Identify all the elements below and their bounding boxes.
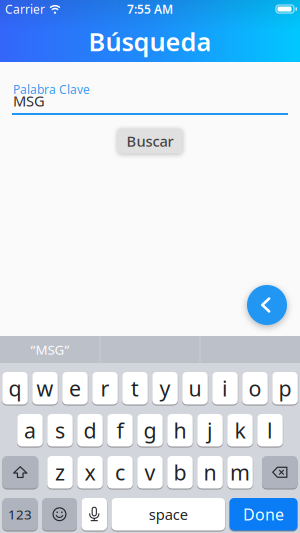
staticText: c — [115, 458, 125, 486]
staticText: a — [24, 416, 36, 444]
staticText: 123 — [8, 505, 32, 523]
staticText: 7:55 AM — [127, 1, 173, 17]
staticText: i — [222, 374, 228, 402]
staticText: k — [234, 416, 245, 444]
staticText: p — [278, 374, 291, 402]
staticText: m — [230, 458, 250, 486]
staticText: v — [144, 458, 155, 486]
staticText: z — [55, 458, 65, 486]
staticText: q — [8, 374, 21, 402]
staticText: e — [69, 374, 81, 402]
staticText: o — [248, 374, 261, 402]
staticText: d — [83, 416, 96, 444]
staticText: r — [100, 374, 109, 402]
staticText: space — [149, 504, 188, 524]
staticText: l — [267, 416, 273, 444]
staticText: j — [207, 416, 213, 444]
staticText: u — [188, 374, 201, 402]
staticText: n — [203, 458, 216, 486]
staticText: h — [173, 416, 186, 444]
staticText: Done — [243, 504, 284, 525]
staticText: w — [36, 374, 53, 402]
staticText: Carrier — [5, 1, 45, 17]
staticText: Búsqueda — [88, 24, 211, 58]
staticText: b — [173, 458, 186, 486]
staticText: MSG — [13, 91, 45, 110]
staticText: t — [131, 374, 139, 402]
staticText: x — [84, 458, 95, 486]
staticText: “MSG” — [30, 341, 69, 358]
staticText: f — [116, 416, 123, 444]
staticText: Buscar — [126, 131, 173, 151]
staticText: s — [55, 416, 65, 444]
staticText: Palabra Clave — [13, 81, 90, 97]
staticText: y — [159, 374, 170, 402]
staticText: g — [143, 416, 156, 444]
